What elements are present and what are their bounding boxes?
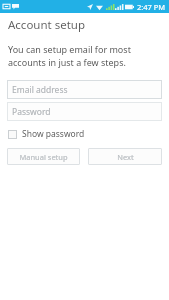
staticText: Show password — [22, 128, 85, 140]
staticText: Password — [12, 106, 51, 118]
button[interactable]: Password — [7, 102, 162, 121]
button[interactable]: Show password — [7, 126, 86, 142]
staticText: Next — [117, 152, 134, 162]
staticText: Account setup — [8, 17, 86, 33]
staticText: 2:47 PM — [137, 2, 166, 12]
button[interactable]: Manual setup — [7, 148, 80, 165]
button[interactable]: Email address — [7, 80, 162, 99]
button[interactable]: Next — [88, 148, 162, 165]
staticText: You can setup email for most — [8, 43, 131, 55]
staticText: Email address — [12, 84, 68, 96]
staticText: Manual setup — [19, 152, 68, 162]
staticText: accounts in just a few steps. — [8, 56, 126, 68]
